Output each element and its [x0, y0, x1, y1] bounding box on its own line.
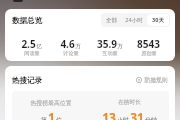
- button[interactable]: 24小时: [121, 14, 147, 26]
- button[interactable]: 30天: [147, 14, 169, 26]
- staticText: 2.5: [21, 37, 36, 51]
- staticText: 第: [41, 116, 47, 120]
- staticText: 小时: [117, 116, 129, 120]
- staticText: 35.9: [97, 37, 117, 51]
- staticText: 8543: [137, 37, 160, 51]
- button[interactable]: 全部: [102, 15, 121, 26]
- staticText: 30天: [152, 16, 164, 24]
- staticText: 全部: [106, 17, 117, 24]
- staticText: 数据总览: [12, 16, 42, 25]
- staticText: 热搜记录: [12, 76, 42, 85]
- staticText: 亿: [36, 43, 42, 50]
- staticText: 原创量: [141, 50, 157, 57]
- staticText: 防撤规则: [144, 76, 168, 83]
- staticText: 讨论量: [63, 50, 79, 57]
- staticText: 分钟: [145, 116, 157, 120]
- staticText: ?: [138, 78, 140, 83]
- staticText: 在榜时长: [118, 99, 141, 106]
- staticText: 4.6: [60, 37, 75, 51]
- staticText: 位: [56, 116, 62, 120]
- staticText: 万: [117, 43, 123, 50]
- staticText: 13: [102, 109, 116, 120]
- staticText: 31: [130, 109, 144, 120]
- staticText: 热搜榜最高位置: [30, 99, 72, 106]
- staticText: 1: [48, 109, 55, 120]
- staticText: 万: [75, 43, 81, 50]
- button[interactable]: ?: [136, 76, 168, 83]
- staticText: 24小时: [125, 16, 143, 24]
- staticText: 互动量: [102, 50, 118, 57]
- staticText: 阅读量: [24, 50, 40, 57]
